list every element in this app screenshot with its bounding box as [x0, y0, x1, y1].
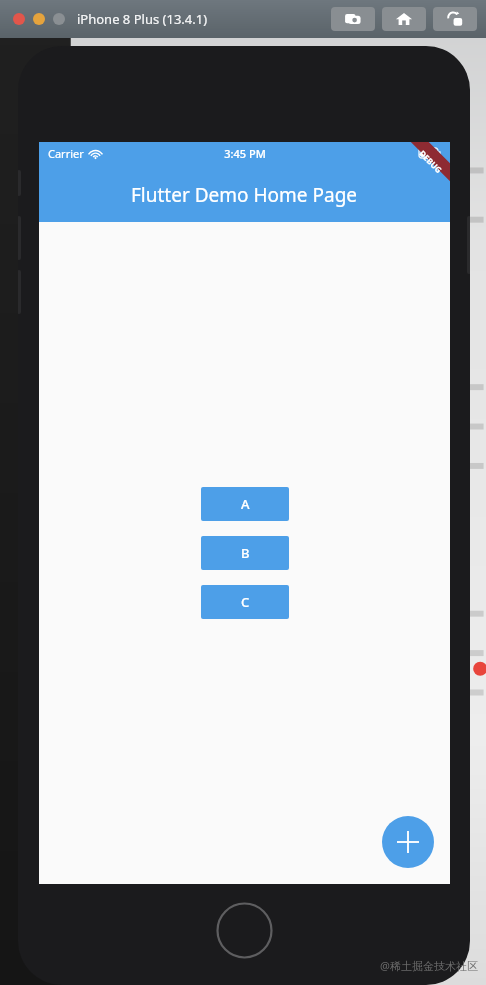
- staticText: DEBUG: [417, 148, 445, 175]
- button[interactable]: Home button: [216, 902, 273, 959]
- staticText: B: [241, 544, 250, 562]
- staticText: @稀土掘金技术社区: [380, 958, 478, 973]
- staticText: iPhone 8 Plus (13.4.1): [77, 10, 208, 28]
- button[interactable]: Zoom: [53, 13, 65, 25]
- staticText: A: [241, 495, 250, 513]
- staticText: Carrier: [48, 146, 84, 161]
- button[interactable]: Increment: [382, 816, 434, 868]
- staticText: 3:45 PM: [224, 146, 266, 161]
- staticText: C: [241, 593, 250, 611]
- button[interactable]: Minimize: [33, 13, 45, 25]
- button[interactable]: Screenshot: [331, 7, 375, 31]
- button[interactable]: Close: [13, 13, 25, 25]
- button[interactable]: C: [201, 585, 289, 619]
- button[interactable]: Rotate: [433, 7, 477, 31]
- button[interactable]: A: [201, 487, 289, 521]
- staticText: Flutter Demo Home Page: [131, 182, 358, 208]
- button[interactable]: B: [201, 536, 289, 570]
- button[interactable]: Home: [382, 7, 426, 31]
